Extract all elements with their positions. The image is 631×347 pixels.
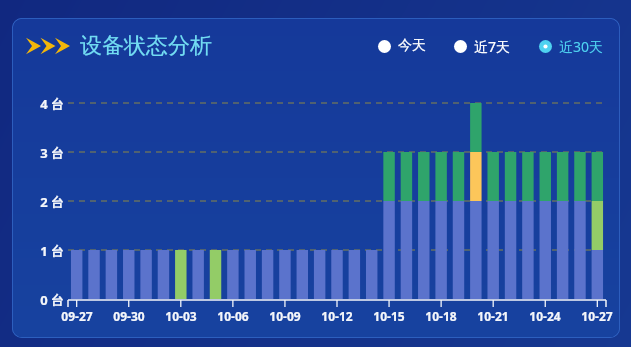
staticText: 10-21 (468, 308, 518, 324)
staticText: 1 台 (24, 242, 64, 260)
staticText: 今天 (398, 37, 426, 55)
button[interactable]: 近30天 (539, 37, 604, 56)
staticText: 设备状态分析 (80, 32, 212, 60)
other: Section marker (26, 35, 72, 57)
staticText: 近7天 (474, 37, 511, 56)
staticText: 4 台 (24, 95, 64, 113)
staticText: 0 台 (24, 291, 64, 309)
staticText: 3 台 (24, 144, 64, 162)
staticText: 10-24 (520, 308, 570, 324)
staticText: 近30天 (559, 37, 604, 56)
staticText: 10-09 (260, 308, 310, 324)
staticText: 10-27 (572, 308, 620, 324)
button[interactable]: 今天 (378, 37, 426, 55)
button[interactable]: 近7天 (454, 37, 511, 56)
staticText: 09-27 (52, 308, 102, 324)
staticText: 10-15 (364, 308, 414, 324)
staticText: 09-30 (104, 308, 154, 324)
staticText: 10-18 (416, 308, 466, 324)
staticText: 10-03 (156, 308, 206, 324)
staticText: 2 台 (24, 193, 64, 211)
staticText: 10-06 (208, 308, 258, 324)
staticText: 10-12 (312, 308, 362, 324)
